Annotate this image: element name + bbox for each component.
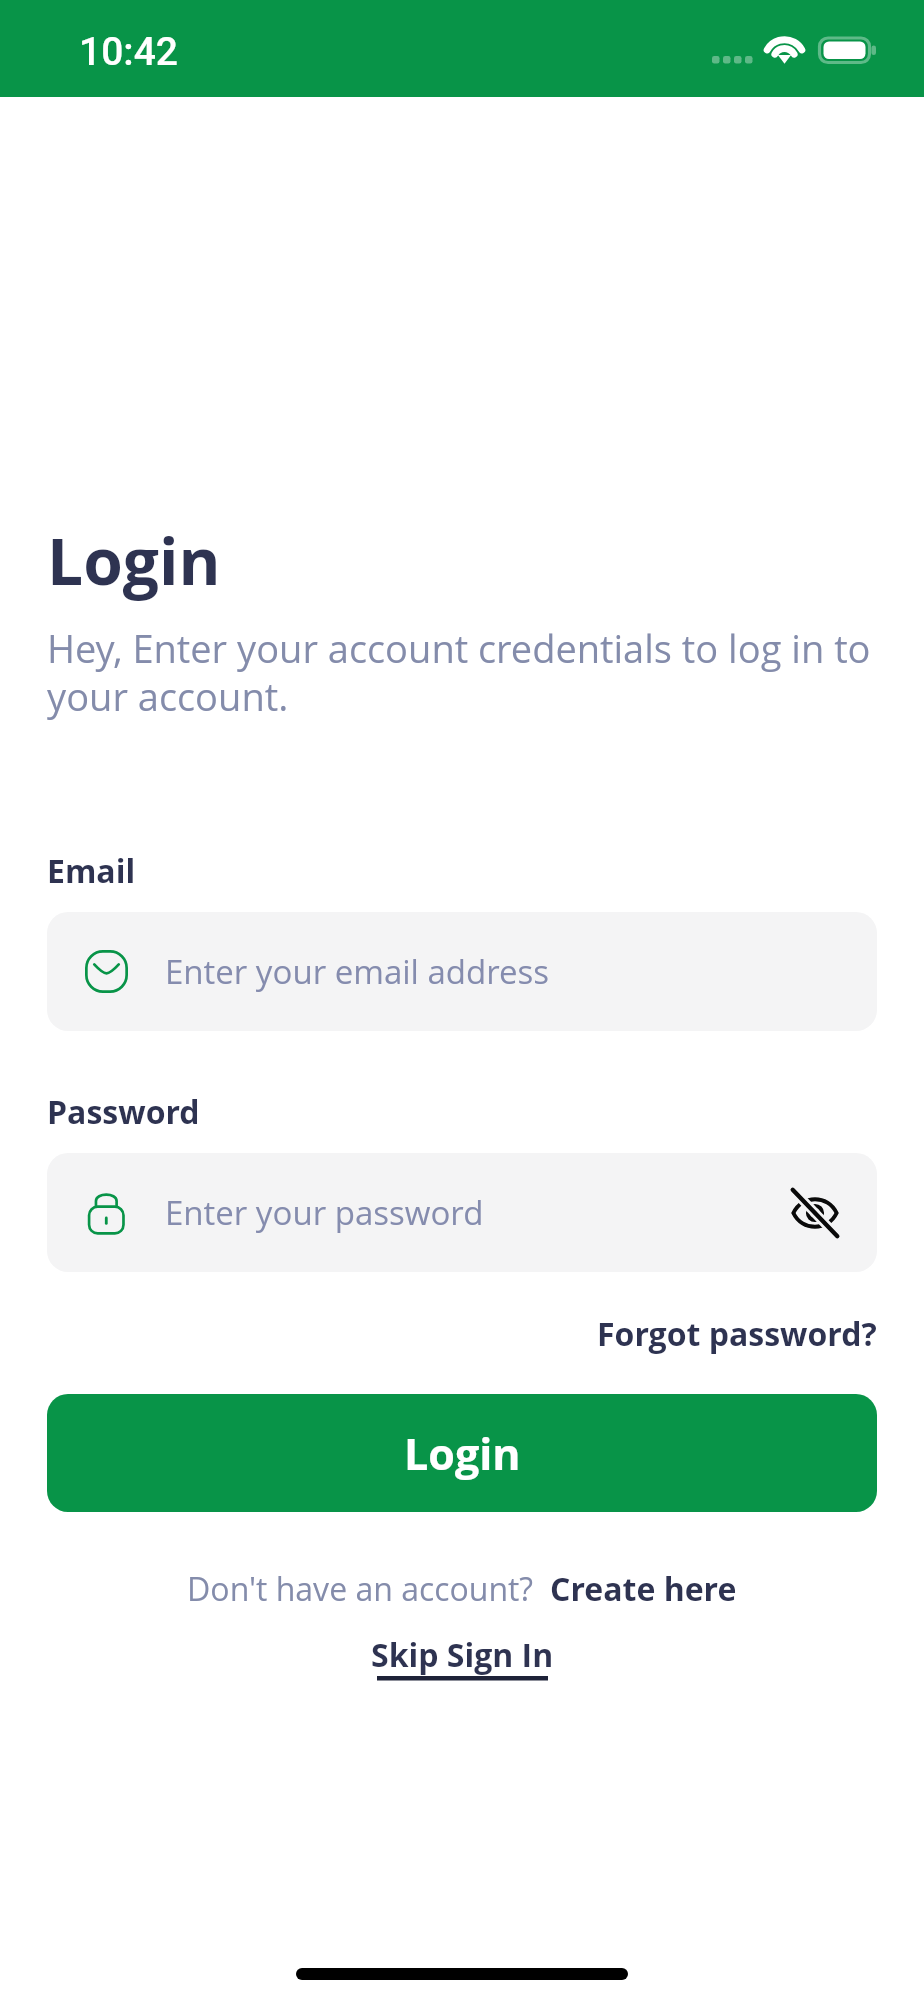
staticText: Login bbox=[47, 517, 221, 604]
button[interactable]: Forgot password? bbox=[597, 1312, 877, 1356]
staticText: Login bbox=[404, 1424, 521, 1483]
staticText: Skip Sign In bbox=[371, 1633, 554, 1677]
staticText: Enter your password bbox=[165, 1190, 484, 1235]
staticText: Create here bbox=[550, 1567, 737, 1611]
button[interactable]: Enter your email address bbox=[47, 912, 877, 1031]
button[interactable]: Create here bbox=[550, 1567, 737, 1611]
button[interactable]: Show password bbox=[785, 1183, 845, 1243]
staticText: 10:42 bbox=[79, 29, 179, 75]
button[interactable]: Login bbox=[47, 1394, 877, 1512]
staticText: Email bbox=[47, 849, 136, 893]
button[interactable]: Skip Sign In bbox=[371, 1633, 554, 1677]
staticText: Enter your email address bbox=[165, 949, 550, 994]
staticText: Forgot password? bbox=[597, 1312, 877, 1356]
staticText: Password bbox=[47, 1090, 200, 1134]
staticText: Hey, Enter your account credentials to l… bbox=[47, 622, 877, 723]
staticText: Don't have an account? bbox=[187, 1567, 534, 1611]
button[interactable]: Enter your password bbox=[47, 1153, 877, 1272]
